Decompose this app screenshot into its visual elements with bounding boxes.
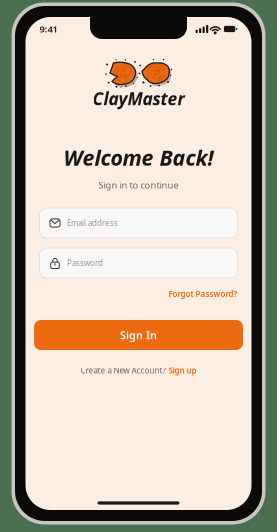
staticText: Password: [67, 258, 103, 268]
button[interactable]: Sign In: [34, 320, 243, 350]
staticText: Sign in to continue: [98, 179, 178, 191]
staticText: Welcome Back!: [63, 143, 213, 172]
staticText: Email address: [67, 218, 118, 228]
staticText: Sign In: [120, 328, 157, 342]
button[interactable]: Sign up: [168, 365, 196, 376]
staticText: Sign up: [168, 365, 196, 376]
staticText: 9:41: [39, 23, 57, 35]
button[interactable]: Forgot Password?: [168, 289, 237, 299]
staticText: Forgot Password?: [168, 289, 237, 299]
staticText: Create a New Account?: [80, 365, 165, 376]
staticText: ClayMaster: [92, 87, 184, 110]
